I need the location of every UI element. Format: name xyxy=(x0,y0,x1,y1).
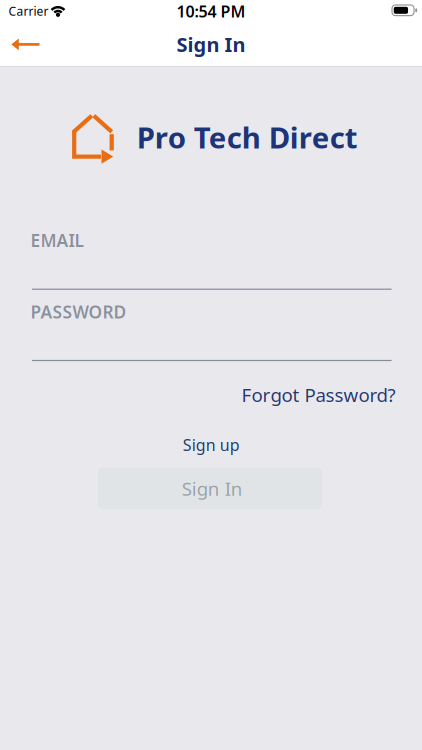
button[interactable]: Sign up xyxy=(183,434,240,455)
staticText: 10:54 PM xyxy=(176,1,245,22)
staticText: EMAIL xyxy=(31,229,84,252)
staticText: Sign In xyxy=(176,31,245,57)
staticText: Carrier xyxy=(8,3,48,19)
staticText: Pro Tech Direct xyxy=(137,117,358,156)
staticText: PASSWORD xyxy=(31,300,127,323)
staticText: Forgot Password? xyxy=(241,382,395,407)
button[interactable] xyxy=(10,37,40,51)
button[interactable]: Forgot Password? xyxy=(241,382,395,407)
button[interactable]: Sign In xyxy=(98,468,322,509)
staticText: Sign up xyxy=(183,434,240,455)
staticText: Sign In xyxy=(182,476,243,501)
